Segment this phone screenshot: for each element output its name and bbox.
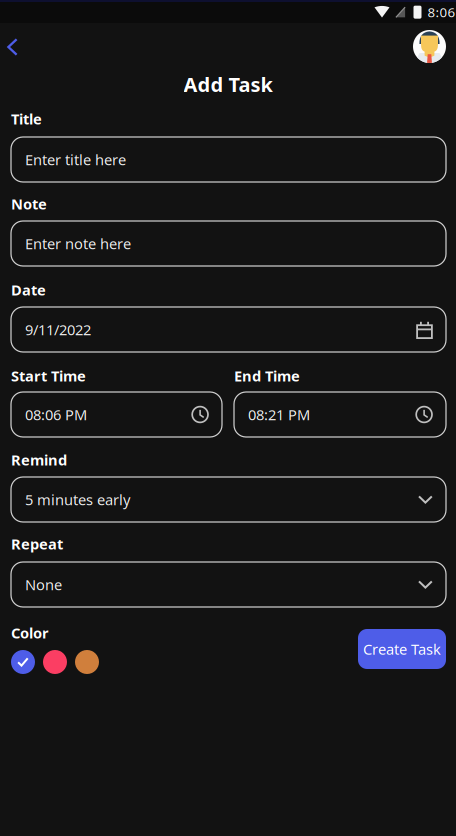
- staticText: 9/11/2022: [25, 320, 91, 339]
- staticText: Create Task: [363, 639, 441, 659]
- staticText: 08:06 PM: [25, 405, 87, 424]
- staticText: Color: [11, 623, 49, 642]
- button[interactable]: None: [0, 0, 446, 607]
- button[interactable]: Create Task: [0, 0, 446, 669]
- staticText: Start Time: [11, 366, 86, 385]
- staticText: 8:06: [427, 3, 455, 21]
- staticText: Note: [11, 194, 47, 213]
- button[interactable]: 9/11/2022: [0, 0, 446, 352]
- button[interactable]: Blue colour, selected: [11, 650, 35, 674]
- staticText: Add Task: [183, 71, 272, 98]
- staticText: Repeat: [11, 534, 63, 553]
- staticText: End Time: [234, 366, 300, 385]
- staticText: Remind: [11, 450, 67, 469]
- staticText: 5 minutes early: [25, 490, 130, 509]
- staticText: Enter note here: [25, 234, 131, 253]
- staticText: Date: [11, 280, 46, 299]
- staticText: 08:21 PM: [248, 405, 310, 424]
- staticText: Title: [11, 109, 42, 128]
- staticText: None: [25, 575, 62, 594]
- button[interactable]: 5 minutes early: [0, 0, 446, 522]
- button[interactable]: Profile: [413, 0, 456, 63]
- button[interactable]: 08:06 PM: [0, 0, 222, 437]
- button[interactable]: 08:21 PM: [0, 0, 446, 437]
- button[interactable]: Pink colour: [43, 650, 67, 674]
- button[interactable]: Back: [0, 0, 18, 56]
- button[interactable]: Orange colour: [75, 650, 99, 674]
- staticText: Enter title here: [25, 150, 126, 169]
